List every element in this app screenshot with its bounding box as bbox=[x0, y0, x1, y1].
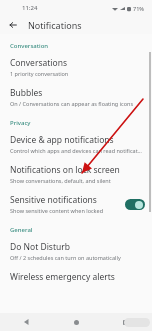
staticText: Off / 2 schedules can turn on automatica… bbox=[10, 254, 121, 261]
staticText: Bubbles bbox=[10, 87, 43, 99]
staticText: Conversation bbox=[10, 42, 49, 50]
staticText: Conversations bbox=[10, 57, 67, 69]
staticText: On / Conversations can appear as floatin… bbox=[10, 100, 134, 107]
staticText: 11:24 bbox=[22, 4, 38, 12]
button[interactable]: Recents bbox=[118, 315, 132, 329]
button[interactable]: Home bbox=[69, 315, 83, 329]
button[interactable]: Back bbox=[6, 18, 20, 32]
staticText: Control which apps and devices can read … bbox=[10, 147, 142, 154]
staticText: Notifications bbox=[28, 19, 82, 31]
staticText: Wireless emergency alerts bbox=[10, 271, 115, 283]
button[interactable]: Conversations bbox=[0, 52, 152, 82]
button[interactable]: Wireless emergency alerts bbox=[0, 266, 152, 288]
button[interactable]: Back bbox=[20, 315, 34, 329]
staticText: 1 priority conversation bbox=[10, 70, 69, 77]
staticText: Notifications on lock screen bbox=[10, 164, 120, 176]
staticText: Do Not Disturb bbox=[10, 241, 70, 253]
staticText: Device & app notifications bbox=[10, 134, 114, 146]
staticText: Show conversations, default, and silent bbox=[10, 177, 111, 184]
staticText: General bbox=[10, 226, 33, 234]
button[interactable]: Sensitive notifications bbox=[0, 189, 152, 219]
other: Sensitive notifications toggle bbox=[125, 199, 145, 210]
staticText: Show sensitive content when locked bbox=[10, 207, 104, 214]
button[interactable]: Do Not Disturb bbox=[0, 236, 152, 266]
staticText: Privacy bbox=[10, 119, 31, 127]
button[interactable]: Bubbles bbox=[0, 82, 152, 112]
button[interactable]: Device & app notifications bbox=[0, 129, 152, 159]
button[interactable]: Notifications on lock screen bbox=[0, 159, 152, 189]
staticText: Sensitive notifications bbox=[10, 194, 97, 206]
staticText: 71% bbox=[133, 5, 144, 12]
